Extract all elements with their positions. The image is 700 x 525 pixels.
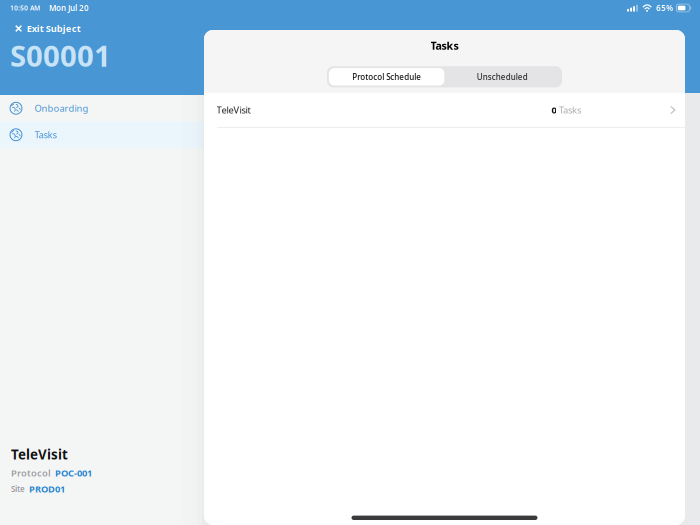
staticText: TeleVisit (216, 104, 250, 116)
staticText: Mon Jul 20 (49, 3, 89, 13)
staticText: Exit Subject (27, 22, 81, 35)
staticText: Site (11, 483, 25, 494)
staticText: Tasks (34, 129, 56, 141)
staticText: TeleVisit (11, 445, 68, 463)
staticText: PROD01 (29, 483, 65, 495)
staticText: Tasks (559, 104, 581, 116)
button[interactable]: Exit Subject (0, 16, 204, 37)
button[interactable]: Onboarding (0, 95, 204, 121)
button[interactable]: Protocol Schedule (329, 68, 444, 86)
staticText: 65% (656, 3, 673, 13)
staticText: 10:50 AM (10, 4, 40, 12)
staticText: 0 (551, 104, 556, 116)
staticText: POC-001 (55, 467, 92, 479)
staticText: Protocol Schedule (352, 71, 421, 82)
button[interactable]: Tasks (0, 121, 204, 148)
staticText: Tasks (430, 38, 458, 53)
staticText: Unscheduled (477, 71, 528, 82)
button[interactable]: Unscheduled (444, 68, 560, 86)
staticText: Onboarding (34, 102, 88, 114)
button[interactable]: TeleVisit (204, 93, 685, 128)
staticText: S00001 (10, 36, 111, 75)
staticText: Protocol (11, 467, 51, 479)
